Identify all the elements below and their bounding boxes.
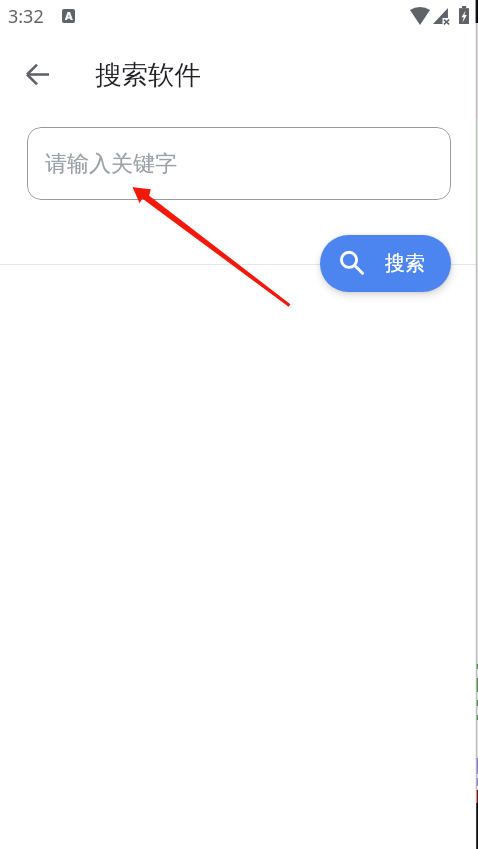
staticText: 请输入关键字 [45, 150, 177, 178]
staticText: 3:32 [8, 4, 44, 29]
button[interactable]: 搜索 [320, 235, 451, 292]
button[interactable]: Back [15, 52, 59, 96]
staticText: 搜索 [385, 251, 425, 276]
staticText: A [65, 9, 73, 22]
staticText: 搜索软件 [95, 58, 201, 91]
button[interactable]: 请输入关键字 [27, 127, 451, 200]
